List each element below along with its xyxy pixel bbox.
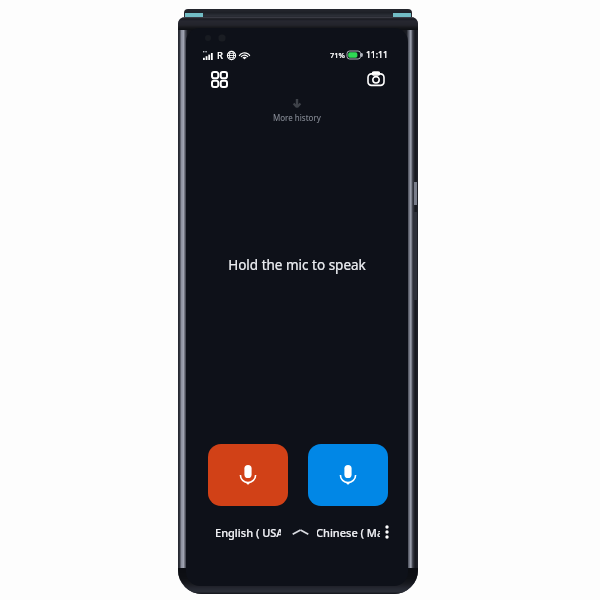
button[interactable]: English ( USA ) — [216, 523, 282, 541]
staticText: More history — [273, 112, 321, 123]
button[interactable]: Camera — [365, 68, 387, 90]
staticText: 71% — [330, 50, 345, 60]
button[interactable]: More options — [377, 521, 397, 543]
staticText: English ( USA ) — [216, 525, 281, 540]
staticText: 11:11 — [366, 49, 388, 61]
button[interactable]: Chinese ( Mandarin ) — [317, 523, 381, 541]
button[interactable]: Swap languages — [287, 523, 313, 541]
staticText: Hold the mic to speak — [186, 256, 408, 274]
button[interactable]: Hold to speak Chinese — [308, 444, 388, 506]
staticText: R — [217, 49, 224, 62]
button[interactable]: Apps — [208, 68, 230, 90]
button[interactable]: More history — [186, 98, 408, 123]
staticText: Chinese ( Mandarin ) — [317, 525, 380, 540]
button[interactable]: Hold to speak English — [208, 444, 288, 506]
